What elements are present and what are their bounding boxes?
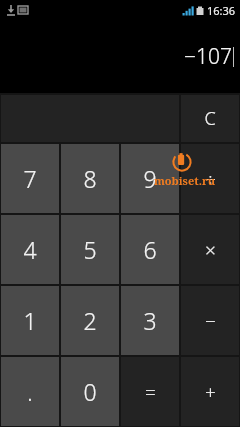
staticText: 2 (83, 305, 97, 336)
staticText: 4 (23, 234, 37, 265)
button[interactable]: 9 (121, 144, 179, 213)
staticText: 1 (23, 305, 37, 336)
button[interactable]: = (121, 357, 179, 426)
staticText: ÷ (205, 166, 216, 192)
staticText: mobiset.ru (154, 173, 215, 188)
staticText: 16:36 (207, 3, 236, 18)
button[interactable]: − (181, 286, 239, 355)
button[interactable]: 3 (121, 286, 179, 355)
staticText: − (205, 308, 216, 334)
button[interactable]: 5 (61, 215, 119, 284)
staticText: −107 (184, 42, 232, 71)
staticText: 9 (143, 163, 157, 194)
button[interactable]: 4 (1, 215, 59, 284)
staticText: C (204, 106, 216, 131)
button[interactable]: C (181, 95, 239, 142)
button[interactable]: 0 (61, 357, 119, 426)
button[interactable]: 6 (121, 215, 179, 284)
button[interactable]: 2 (61, 286, 119, 355)
staticText: = (145, 379, 156, 405)
button[interactable]: × (181, 215, 239, 284)
button[interactable]: 7 (1, 144, 59, 213)
button[interactable]: . (1, 357, 59, 426)
button[interactable]: 8 (61, 144, 119, 213)
staticText: 6 (143, 234, 157, 265)
staticText: × (205, 237, 216, 263)
staticText: 7 (23, 163, 37, 194)
staticText: 0 (83, 376, 97, 407)
staticText: 5 (83, 234, 97, 265)
staticText: 3 (143, 305, 157, 336)
button[interactable]: 1 (1, 286, 59, 355)
staticText: 8 (83, 163, 97, 194)
staticText: + (205, 379, 216, 405)
staticText: . (27, 377, 33, 407)
button[interactable]: + (181, 357, 239, 426)
button[interactable]: ÷ (181, 144, 239, 213)
